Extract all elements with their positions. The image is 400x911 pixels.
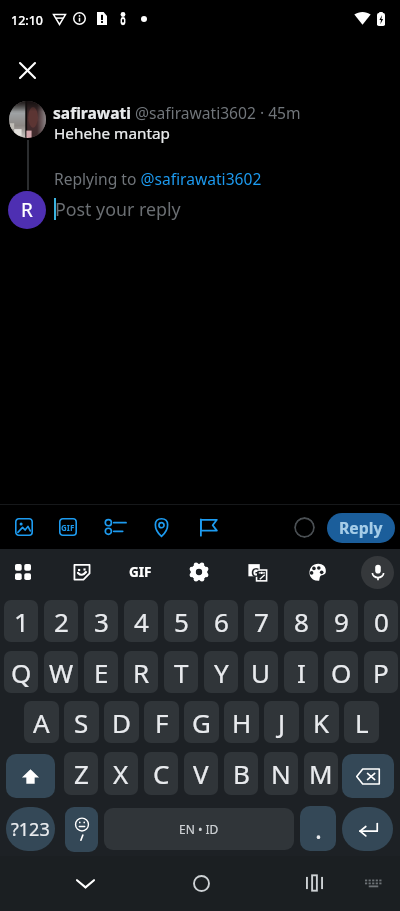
button[interactable]: Themes bbox=[302, 557, 332, 587]
staticText: 4 bbox=[134, 604, 149, 639]
button[interactable]: Z bbox=[64, 752, 98, 795]
button[interactable]: O bbox=[324, 651, 358, 693]
button[interactable]: Emoji bbox=[65, 807, 98, 852]
staticText: G bbox=[251, 564, 260, 577]
button[interactable]: Translate bbox=[242, 557, 272, 587]
button[interactable]: C bbox=[144, 752, 178, 795]
staticText: Z bbox=[74, 756, 89, 791]
button[interactable]: Recent apps bbox=[296, 865, 332, 901]
button[interactable]: Voice input bbox=[361, 556, 394, 589]
staticText: P bbox=[373, 655, 389, 690]
staticText: 3 bbox=[94, 604, 109, 639]
button[interactable]: 8 bbox=[284, 600, 318, 642]
button[interactable]: H bbox=[224, 701, 259, 743]
button[interactable]: Add poll bbox=[101, 513, 129, 541]
button[interactable]: Q bbox=[4, 651, 38, 693]
button[interactable]: B bbox=[224, 752, 258, 795]
button[interactable]: V bbox=[184, 752, 218, 795]
button[interactable]: K bbox=[304, 701, 339, 743]
button[interactable]: 1 bbox=[4, 600, 38, 642]
staticText: Replying to @safirawati3602 bbox=[54, 168, 262, 189]
button[interactable]: Home bbox=[183, 865, 219, 901]
button[interactable]: Apps bbox=[8, 557, 38, 587]
staticText: J bbox=[278, 705, 286, 740]
staticText: 1 bbox=[14, 604, 29, 639]
button[interactable]: Hide keyboard bbox=[67, 865, 103, 901]
button[interactable]: 2 bbox=[44, 600, 78, 642]
staticText: V bbox=[193, 756, 209, 791]
button[interactable]: Change keyboard bbox=[355, 865, 391, 901]
staticText: A bbox=[33, 705, 50, 740]
button[interactable]: Character count bbox=[294, 517, 315, 538]
staticText: D bbox=[112, 705, 131, 740]
button[interactable]: S bbox=[64, 701, 99, 743]
button[interactable]: F bbox=[144, 701, 179, 743]
staticText: EN • ID bbox=[179, 821, 219, 837]
button[interactable]: J bbox=[264, 701, 299, 743]
button[interactable]: 9 bbox=[324, 600, 358, 642]
button[interactable]: Shift bbox=[6, 754, 55, 798]
staticText: . bbox=[315, 811, 322, 846]
button[interactable]: W bbox=[44, 651, 78, 693]
button[interactable]: Settings bbox=[184, 557, 214, 587]
staticText: 2 bbox=[54, 604, 69, 639]
staticText: 0 bbox=[374, 604, 389, 639]
button[interactable]: I bbox=[284, 651, 318, 693]
staticText: I bbox=[297, 655, 306, 690]
button[interactable]: Reply bbox=[327, 513, 395, 543]
button[interactable]: 4 bbox=[124, 600, 158, 642]
button[interactable]: GIF keyboard bbox=[125, 557, 155, 587]
staticText: GIF bbox=[61, 522, 75, 533]
staticText: 9 bbox=[334, 604, 349, 639]
staticText: L bbox=[355, 705, 369, 740]
button[interactable]: . bbox=[300, 806, 336, 851]
button[interactable]: Stickers bbox=[67, 557, 97, 587]
button[interactable]: Space bbox=[104, 808, 294, 850]
button[interactable]: T bbox=[164, 651, 198, 693]
button[interactable]: Add GIF bbox=[54, 513, 82, 541]
button[interactable]: M bbox=[304, 752, 338, 795]
button[interactable]: Backspace bbox=[342, 754, 394, 798]
staticText: 6 bbox=[214, 604, 229, 639]
button[interactable]: N bbox=[264, 752, 298, 795]
staticText: T bbox=[174, 655, 189, 690]
staticText: R bbox=[21, 197, 33, 223]
button[interactable]: 6 bbox=[204, 600, 238, 642]
staticText: K bbox=[313, 705, 330, 740]
button[interactable]: 3 bbox=[84, 600, 118, 642]
staticText: S bbox=[74, 705, 89, 740]
staticText: GIF bbox=[129, 563, 152, 581]
staticText: R bbox=[133, 655, 150, 690]
staticText: H bbox=[232, 705, 252, 740]
staticText: 8 bbox=[294, 604, 309, 639]
button[interactable]: Add photo bbox=[10, 513, 38, 541]
button[interactable]: U bbox=[244, 651, 278, 693]
button[interactable]: 5 bbox=[164, 600, 198, 642]
button[interactable]: Y bbox=[204, 651, 238, 693]
button[interactable]: A bbox=[24, 701, 59, 743]
button[interactable]: ?123 bbox=[6, 807, 55, 851]
button[interactable]: X bbox=[104, 752, 138, 795]
button[interactable]: Close bbox=[9, 52, 45, 88]
button[interactable]: G bbox=[184, 701, 219, 743]
staticText: Y bbox=[214, 655, 229, 690]
staticText: O bbox=[331, 655, 352, 690]
button[interactable]: 7 bbox=[244, 600, 278, 642]
button[interactable]: Enter bbox=[342, 807, 393, 851]
button[interactable]: D bbox=[104, 701, 139, 743]
button[interactable]: E bbox=[84, 651, 118, 693]
staticText: C bbox=[153, 756, 170, 791]
staticText: E bbox=[94, 655, 109, 690]
button[interactable]: L bbox=[344, 701, 379, 743]
staticText: Post your reply bbox=[55, 197, 181, 221]
button[interactable]: 0 bbox=[364, 600, 398, 642]
button[interactable]: R bbox=[124, 651, 158, 693]
button[interactable]: Add location bbox=[147, 513, 175, 541]
button[interactable]: P bbox=[364, 651, 398, 693]
staticText: ?123 bbox=[11, 817, 50, 842]
staticText: G bbox=[192, 705, 211, 740]
button[interactable]: Add topic bbox=[194, 513, 222, 541]
staticText: 7 bbox=[254, 604, 269, 639]
staticText: 12:10 bbox=[11, 12, 44, 29]
staticText: Hehehe mantap bbox=[54, 123, 170, 144]
